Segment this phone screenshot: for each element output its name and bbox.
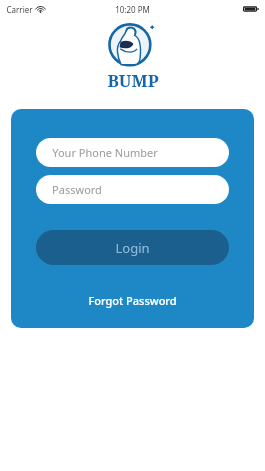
staticText: BUMP (107, 69, 159, 92)
staticText: 10:20 PM (115, 4, 150, 15)
button[interactable]: Your Phone Number (36, 138, 229, 167)
button[interactable]: Forgot Password (80, 289, 185, 312)
staticText: Login (115, 239, 150, 257)
staticText: Forgot Password (88, 293, 177, 308)
button[interactable]: Password (36, 175, 229, 204)
staticText: Carrier (6, 4, 33, 15)
staticText: Your Phone Number (52, 145, 158, 160)
button[interactable]: Login (36, 230, 229, 265)
staticText: Password (52, 182, 102, 197)
